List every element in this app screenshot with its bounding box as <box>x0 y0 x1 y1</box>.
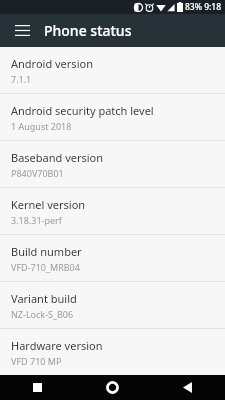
button[interactable]: Home <box>75 375 150 400</box>
staticText: Baseband version <box>11 150 104 165</box>
staticText: 3.18.31-perf <box>11 214 62 226</box>
button[interactable]: Open navigation menu <box>0 14 44 47</box>
staticText: Android security patch level <box>11 103 154 118</box>
staticText: P840V70B01 <box>11 167 64 179</box>
staticText: Variant build <box>11 291 77 306</box>
staticText: Android version <box>11 56 93 71</box>
button[interactable]: Recent apps <box>0 375 75 400</box>
button[interactable]: Baseband version <box>0 141 225 187</box>
staticText: 1 August 2018 <box>11 120 72 132</box>
staticText: VFD-710_MRB04 <box>11 261 80 273</box>
button[interactable]: Back <box>150 375 225 400</box>
button[interactable]: Android version <box>0 47 225 93</box>
button[interactable]: Variant build <box>0 282 225 328</box>
staticText: VFD 710 MP <box>11 355 62 367</box>
button[interactable]: Kernel version <box>0 188 225 234</box>
staticText: Phone status <box>44 21 132 40</box>
button[interactable]: Android security patch level <box>0 94 225 140</box>
staticText: 7.1.1 <box>11 73 32 85</box>
staticText: Hardware version <box>11 338 103 353</box>
button[interactable]: Build number <box>0 235 225 281</box>
staticText: NZ-Lock-S_B06 <box>11 308 74 320</box>
staticText: 83% 9:18 <box>185 1 222 13</box>
button[interactable]: Hardware version <box>0 329 225 375</box>
staticText: Kernel version <box>11 197 86 212</box>
staticText: Build number <box>11 244 82 259</box>
